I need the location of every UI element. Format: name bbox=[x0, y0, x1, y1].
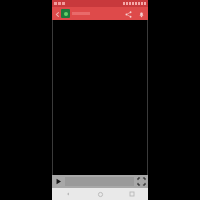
button[interactable]: Back bbox=[52, 188, 84, 200]
button[interactable]: Back bbox=[52, 9, 62, 19]
button[interactable]: Notifications bbox=[136, 9, 146, 19]
button[interactable]: Share bbox=[123, 9, 133, 19]
button[interactable]: Recent apps bbox=[116, 188, 148, 200]
button[interactable]: App logo bbox=[61, 9, 70, 18]
button[interactable]: Play bbox=[53, 176, 64, 187]
button[interactable]: Fullscreen bbox=[136, 176, 147, 187]
button[interactable]: Home bbox=[84, 188, 116, 200]
